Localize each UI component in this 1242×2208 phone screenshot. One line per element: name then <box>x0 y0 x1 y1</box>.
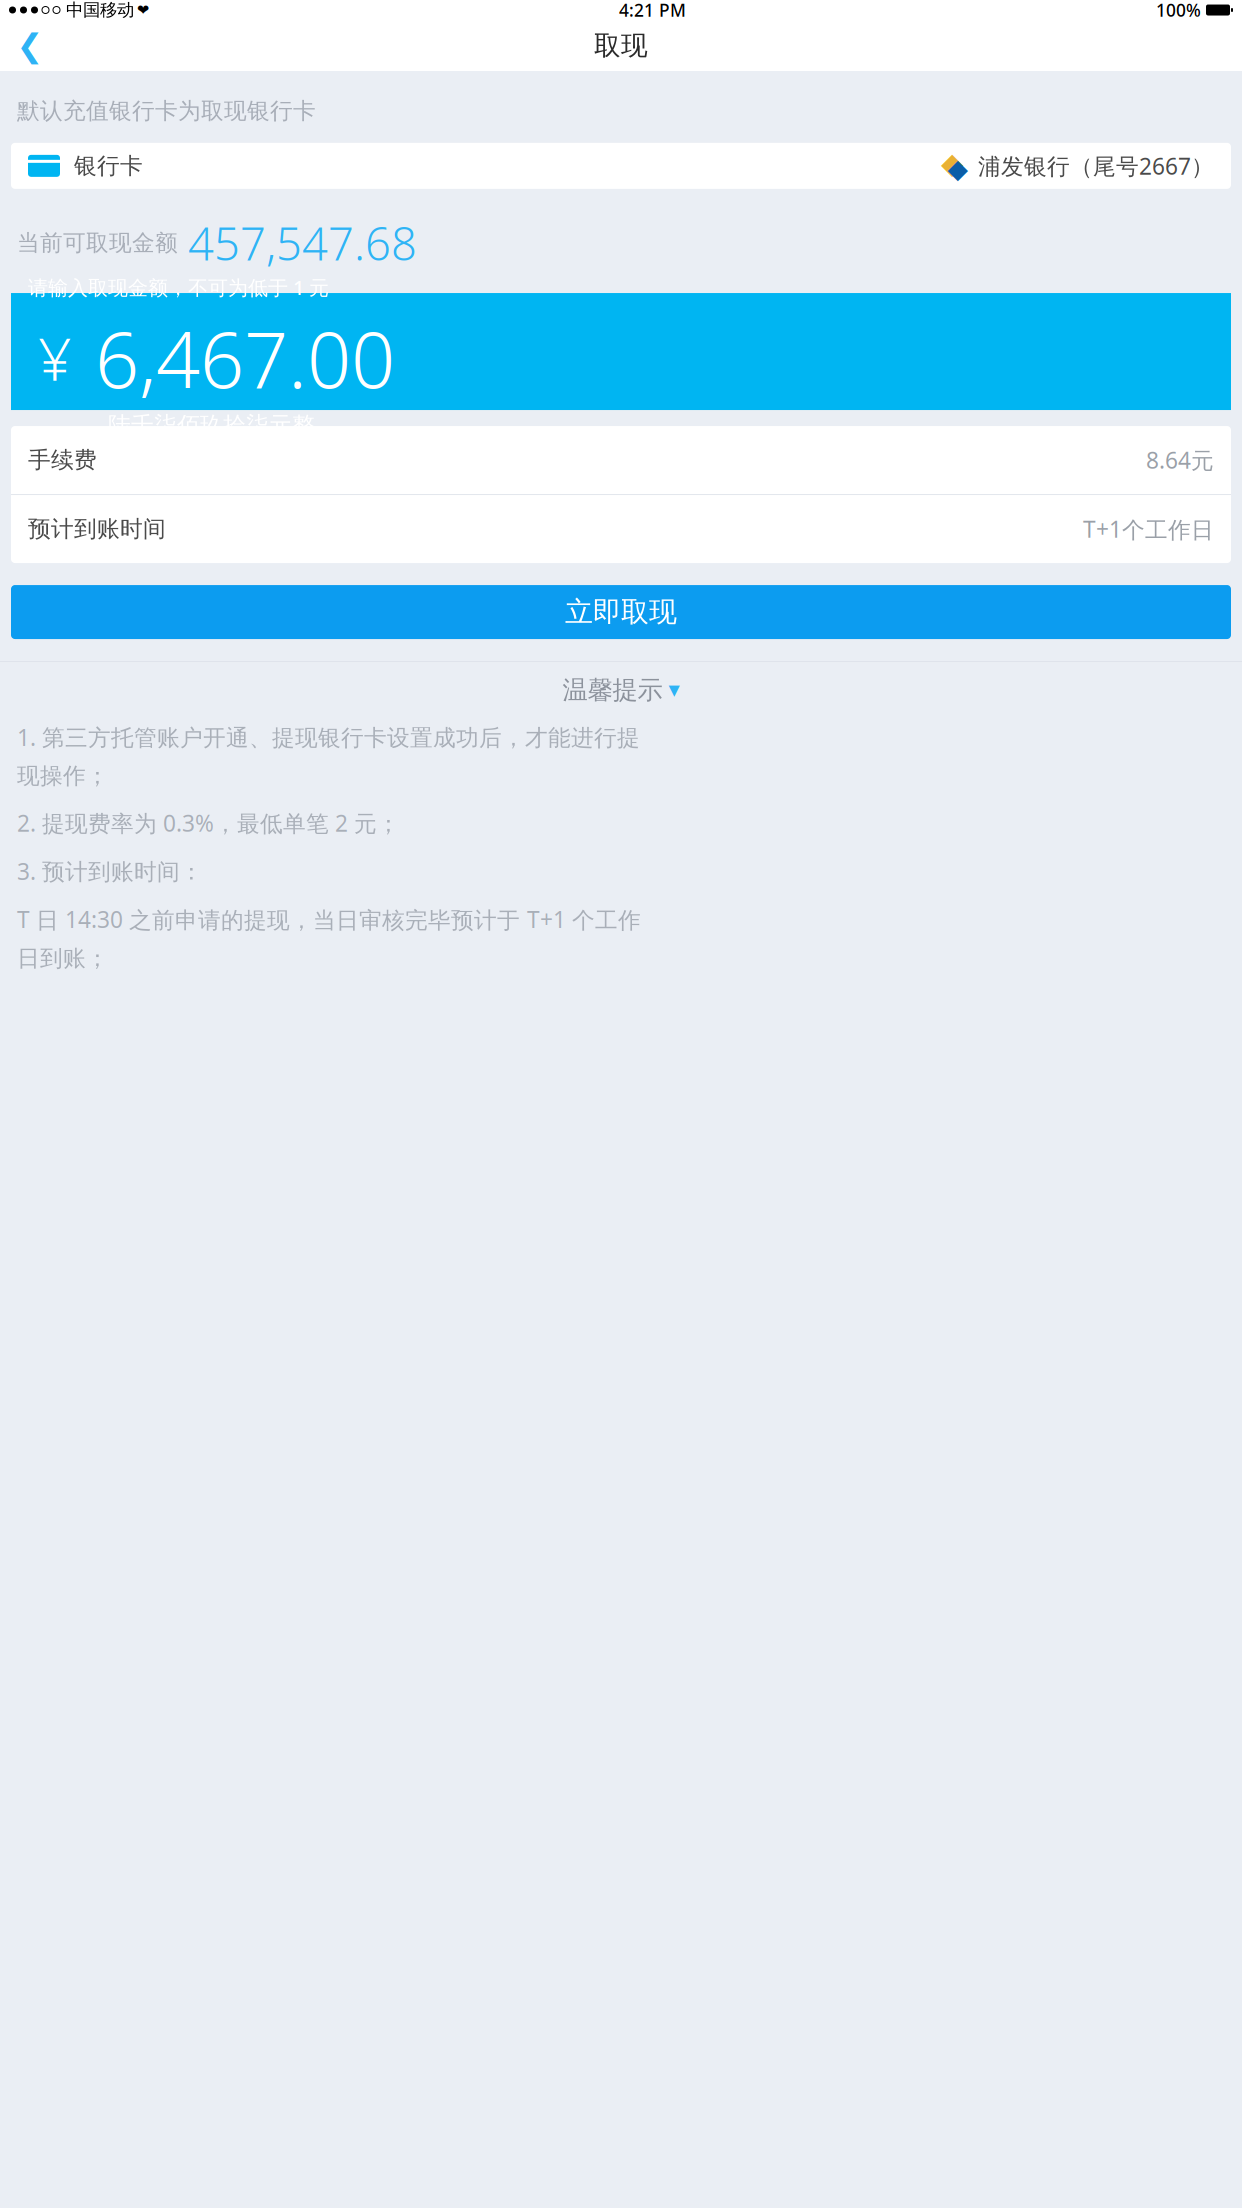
staticText: 取现 <box>594 29 648 62</box>
staticText: 6,467.00 <box>95 307 395 409</box>
staticText: 8.64元 <box>1146 445 1214 475</box>
staticText: ▼ <box>668 682 679 698</box>
staticText: 现操作； <box>17 762 109 790</box>
staticText: 温馨提示 <box>562 674 662 706</box>
staticText: 请输入取现金额，不可为低于 1 元 <box>28 274 329 301</box>
staticText: 默认充值银行卡为取现银行卡 <box>17 97 316 125</box>
staticText: 4:21 PM <box>619 0 686 21</box>
staticText: T+1个工作日 <box>1083 514 1214 544</box>
staticText: 手续费 <box>28 446 97 474</box>
staticText: 浦发银行（尾号2667） <box>978 151 1214 181</box>
staticText: 当前可取现金额 <box>17 229 178 257</box>
button[interactable]: Back <box>8 23 52 67</box>
staticText: ❤ <box>137 2 149 18</box>
staticText: ¥ <box>38 319 71 397</box>
staticText: 中国移动 <box>66 0 134 21</box>
staticText: 立即取现 <box>565 595 677 629</box>
staticText: 3. 预计到账时间： <box>17 856 203 886</box>
button[interactable]: 温馨提示 <box>17 662 1225 718</box>
staticText: 1. 第三方托管账户开通、提现银行卡设置成功后，才能进行提 <box>17 722 640 752</box>
staticText: 457,547.68 <box>188 213 417 273</box>
staticText: ◆ <box>941 147 964 180</box>
staticText: 银行卡 <box>74 152 143 180</box>
staticText: 陆千柒佰玖拾柒元整 <box>108 411 315 439</box>
staticText: 预计到账时间 <box>28 515 166 543</box>
button[interactable]: 立即取现 <box>11 585 1231 639</box>
staticText: 日到账； <box>17 944 109 972</box>
staticText: 2. 提现费率为 0.3%，最低单笔 2 元； <box>17 808 400 838</box>
staticText: T 日 14:30 之前申请的提现，当日审核完毕预计于 T+1 个工作 <box>17 904 641 934</box>
staticText: ◆ <box>947 154 968 184</box>
staticText: ❮ <box>16 27 43 64</box>
staticText: 100% <box>1156 0 1201 21</box>
button[interactable]: 银行卡 <box>11 143 1231 189</box>
